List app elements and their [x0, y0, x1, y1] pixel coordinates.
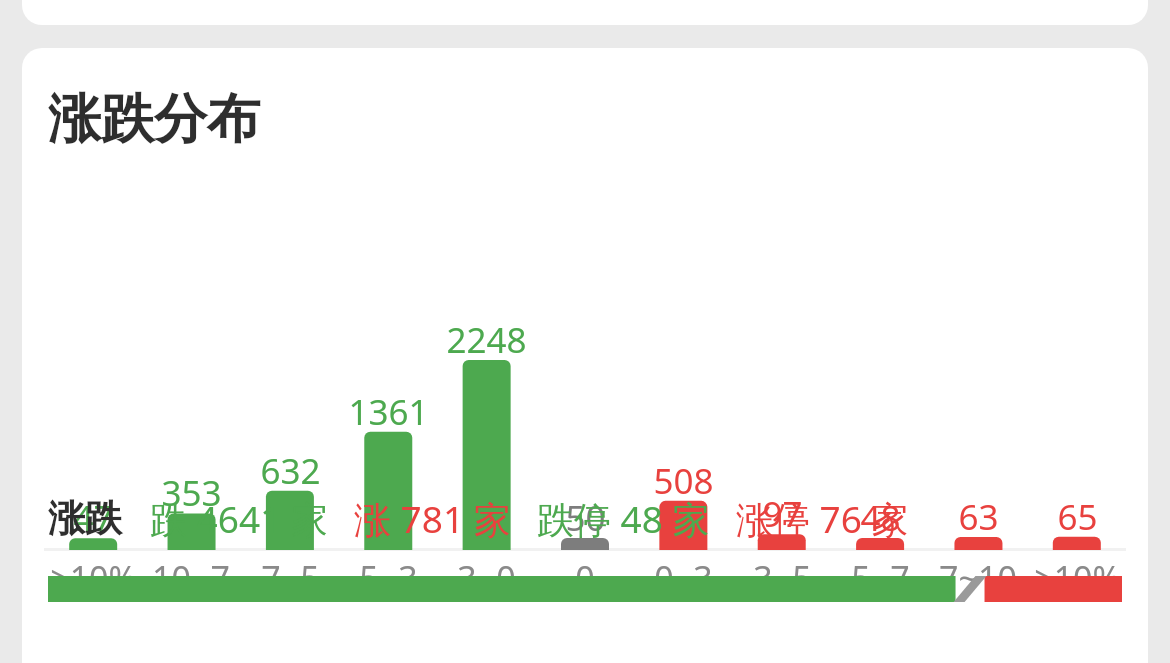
staticText: >10%	[1034, 555, 1121, 601]
staticText: 跌 4641 家	[150, 493, 328, 544]
button[interactable]: 3~5	[733, 555, 831, 603]
staticText: 3~0	[457, 555, 516, 601]
staticText: 97	[762, 490, 803, 534]
staticText: 涨跌	[48, 495, 122, 542]
button[interactable]: 10~7	[142, 555, 240, 603]
staticText: 7~5	[261, 555, 320, 601]
staticText: 5~7	[851, 555, 910, 601]
staticText: 0~3	[654, 555, 713, 601]
staticText: 63	[958, 493, 999, 537]
staticText: 3~5	[753, 555, 812, 601]
staticText: 47	[73, 494, 114, 538]
staticText: 7~10	[939, 555, 1017, 601]
staticText: 涨停 76 家	[736, 493, 909, 544]
staticText: 5~3	[359, 555, 418, 601]
button[interactable]: >10%	[1028, 555, 1126, 603]
staticText: >10%	[50, 555, 137, 601]
staticText: 48	[860, 494, 901, 538]
staticText: 涨跌分布	[48, 86, 260, 153]
staticText: 10~7	[152, 555, 230, 601]
staticText: 353	[161, 469, 222, 513]
staticText: 65	[1057, 493, 1098, 537]
button[interactable]: 5~7	[831, 555, 929, 603]
button[interactable]: 7~5	[241, 555, 339, 603]
staticText: 50	[565, 494, 606, 538]
staticText: 跌停 48 家	[537, 493, 710, 544]
button[interactable]: 0	[536, 555, 634, 603]
staticText: 2248	[446, 316, 527, 360]
button[interactable]: >10%	[44, 555, 142, 603]
staticText: 涨 781 家	[354, 493, 511, 544]
button[interactable]: Up down ratio	[48, 576, 1122, 602]
button[interactable]: 0~3	[634, 555, 732, 603]
button[interactable]: 7~10	[929, 555, 1027, 603]
staticText: 0	[575, 555, 595, 601]
staticText: 1361	[348, 388, 429, 432]
button[interactable]: 涨跌分布	[48, 86, 260, 153]
staticText: 632	[260, 447, 321, 491]
button[interactable]: 5~3	[339, 555, 437, 603]
staticText: 508	[653, 457, 714, 501]
button[interactable]: 3~0	[437, 555, 535, 603]
